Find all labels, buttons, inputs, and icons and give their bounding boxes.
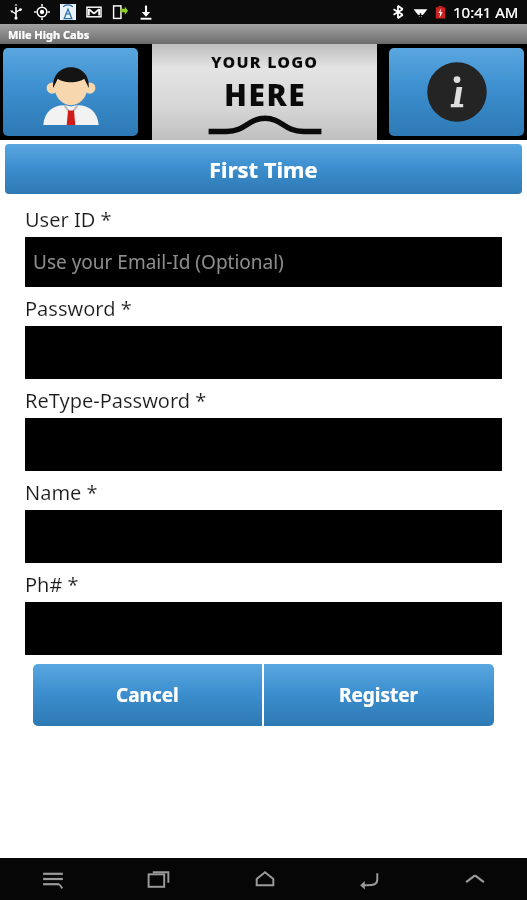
staticText: User ID * (25, 206, 112, 233)
staticText: Use your Email-Id (Optional) (33, 249, 284, 275)
button[interactable]: Register (264, 664, 494, 726)
staticText: ReType-Password * (25, 387, 207, 414)
staticText: 10:41 AM (453, 2, 519, 22)
button[interactable]: Cancel (33, 664, 262, 726)
button[interactable]: Recent apps (106, 858, 212, 900)
button[interactable]: Back (317, 858, 422, 900)
button[interactable]: Menu (0, 858, 106, 900)
button[interactable]: Profile (3, 48, 138, 136)
staticText: First Time (209, 154, 318, 184)
staticText: HERE (224, 74, 307, 115)
staticText: Register (339, 682, 419, 708)
staticText: Ph# * (25, 571, 79, 598)
staticText: YOUR LOGO (211, 51, 319, 73)
button[interactable]: Home (212, 858, 317, 900)
staticText: Cancel (116, 682, 179, 708)
button[interactable]: Expand (422, 858, 527, 900)
staticText: Name * (25, 479, 98, 506)
staticText: Password * (25, 295, 132, 322)
button[interactable]: Use your Email-Id (Optional) (25, 237, 502, 287)
button[interactable]: Logo (152, 44, 377, 140)
button[interactable]: First Time (5, 144, 522, 194)
staticText: Mile High Cabs (8, 27, 90, 42)
button[interactable]: Information (389, 48, 524, 136)
